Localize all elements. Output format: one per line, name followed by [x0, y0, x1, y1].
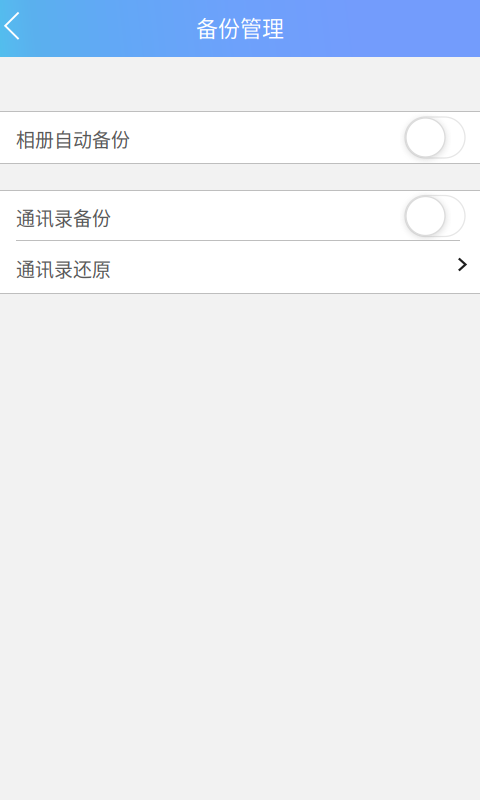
- button[interactable]: 通讯录还原: [0, 241, 480, 293]
- staticText: 备份管理: [196, 11, 284, 43]
- button[interactable]: 通讯录备份: [0, 191, 480, 241]
- button[interactable]: Back: [0, 0, 36, 57]
- staticText: 通讯录还原: [16, 255, 111, 282]
- staticText: 相册自动备份: [16, 125, 130, 153]
- button[interactable]: 相册自动备份: [0, 112, 480, 163]
- staticText: 通讯录备份: [16, 204, 111, 231]
